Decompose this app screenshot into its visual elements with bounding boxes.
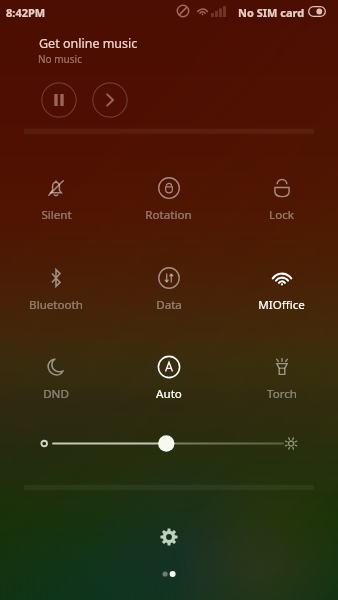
staticText: 8:42PM (6, 5, 46, 20)
button[interactable]: Rotation (112, 163, 225, 225)
staticText: Rotation (145, 207, 192, 223)
staticText: No music (38, 52, 82, 66)
staticText: Get online music (39, 35, 138, 52)
staticText: Data (156, 297, 182, 313)
button[interactable]: Lock (225, 163, 338, 225)
staticText: Silent (41, 207, 72, 223)
button[interactable]: DND (0, 342, 112, 404)
button[interactable]: Silent (0, 163, 112, 225)
button[interactable]: Pause (41, 82, 77, 118)
staticText: Bluetooth (29, 297, 83, 313)
staticText: Auto (156, 386, 182, 402)
button[interactable]: Settings (151, 519, 187, 555)
staticText: MIOffice (258, 297, 305, 313)
button[interactable]: Data (112, 253, 225, 315)
staticText: Lock (269, 207, 294, 223)
button[interactable]: Bluetooth (0, 253, 112, 315)
button[interactable]: Auto (112, 342, 225, 404)
button[interactable]: Torch (225, 342, 338, 404)
button[interactable]: Next (92, 82, 128, 118)
staticText: DND (43, 386, 69, 402)
staticText: No SIM card (238, 5, 305, 20)
staticText: Torch (267, 386, 297, 402)
button[interactable]: MIOffice (225, 253, 338, 315)
